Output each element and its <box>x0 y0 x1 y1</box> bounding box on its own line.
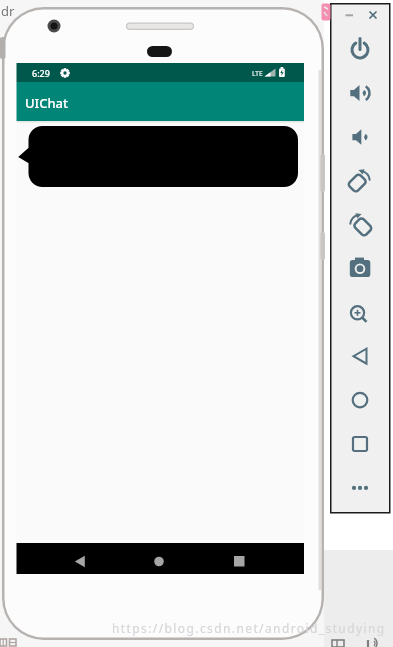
button[interactable] <box>338 160 382 200</box>
button[interactable] <box>338 291 382 331</box>
button[interactable] <box>338 379 382 419</box>
staticText: LTE <box>252 69 263 78</box>
staticText: dr <box>1 2 15 20</box>
button[interactable] <box>338 248 382 288</box>
button[interactable] <box>338 467 382 507</box>
staticText: 6:29 <box>32 67 50 79</box>
button[interactable] <box>60 545 100 573</box>
button[interactable] <box>338 335 382 375</box>
staticText: https://blog.csdn.net/android_studying <box>112 620 386 636</box>
button[interactable] <box>340 6 358 24</box>
button[interactable] <box>338 423 382 463</box>
button[interactable] <box>338 72 382 112</box>
button[interactable] <box>338 116 382 156</box>
button[interactable] <box>338 29 382 69</box>
staticText: UIChat <box>25 94 69 112</box>
button[interactable] <box>364 6 382 24</box>
button[interactable] <box>338 204 382 244</box>
button[interactable] <box>139 545 179 573</box>
button[interactable] <box>219 545 259 573</box>
